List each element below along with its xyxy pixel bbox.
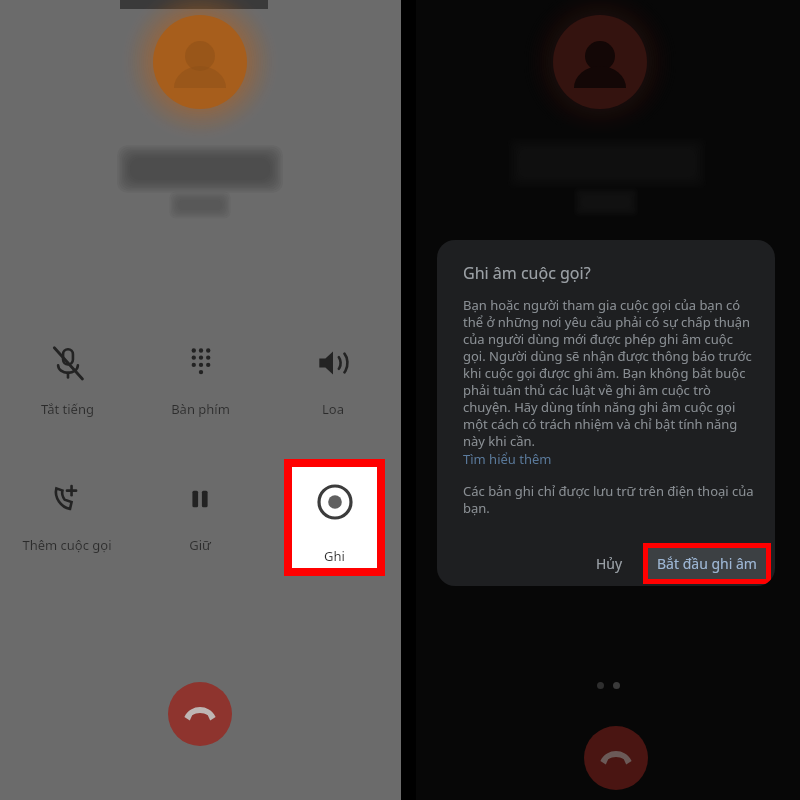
button[interactable]: Loa bbox=[281, 336, 385, 428]
button[interactable]: Giữ bbox=[148, 472, 252, 564]
button[interactable]: Bàn phím bbox=[148, 336, 252, 428]
staticText: Hủy bbox=[596, 554, 623, 573]
button[interactable]: Tắt tiếng bbox=[15, 336, 119, 428]
staticText: Ghi bbox=[324, 547, 345, 565]
button[interactable]: Tìm hiểu thêm bbox=[463, 450, 552, 468]
staticText: Bạn hoặc người tham gia cuộc gọi của bạn… bbox=[463, 296, 755, 450]
staticText: Thêm cuộc gọi bbox=[22, 536, 112, 554]
button[interactable]: Ghi bbox=[292, 467, 377, 568]
staticText: Các bản ghi chỉ được lưu trữ trên điện t… bbox=[463, 482, 755, 517]
staticText: Loa bbox=[322, 400, 344, 418]
staticText: Tắt tiếng bbox=[41, 400, 94, 418]
button[interactable]: End call bbox=[168, 682, 232, 746]
staticText: Tìm hiểu thêm bbox=[463, 450, 552, 468]
staticText: Giữ bbox=[189, 536, 211, 554]
staticText: Ghi âm cuộc gọi? bbox=[463, 262, 591, 284]
button[interactable]: Thêm cuộc gọi bbox=[15, 472, 119, 564]
button[interactable]: Bắt đầu ghi âm bbox=[648, 548, 766, 579]
staticText: Bàn phím bbox=[171, 400, 230, 418]
button[interactable]: End call bbox=[584, 726, 648, 790]
button[interactable]: Hủy bbox=[582, 544, 637, 583]
staticText: Bắt đầu ghi âm bbox=[657, 554, 757, 573]
